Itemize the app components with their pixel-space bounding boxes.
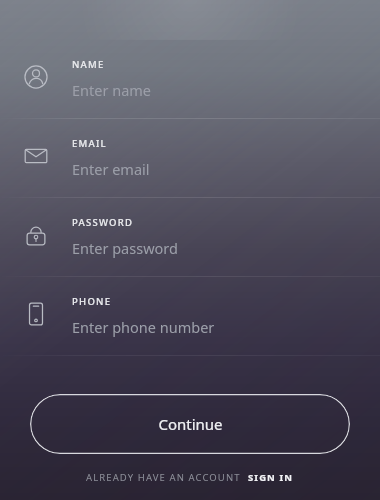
- staticText: Enter password: [72, 238, 178, 258]
- staticText: NAME: [72, 58, 105, 71]
- staticText: Enter name: [72, 80, 152, 100]
- staticText: ALREADY HAVE AN ACCOUNT: [86, 471, 241, 484]
- staticText: Enter phone number: [72, 317, 215, 337]
- staticText: PASSWORD: [72, 216, 134, 229]
- staticText: SIGN IN: [248, 471, 294, 484]
- staticText: Continue: [158, 414, 223, 434]
- button[interactable]: ALREADY HAVE AN ACCOUNT: [86, 471, 294, 484]
- staticText: Enter email: [72, 159, 150, 179]
- button[interactable]: Name: [0, 40, 380, 119]
- staticText: PHONE: [72, 295, 112, 308]
- button[interactable]: Phone: [0, 277, 380, 356]
- button[interactable]: Email: [0, 119, 380, 198]
- other: Phone: [24, 302, 48, 326]
- other: Name: [24, 65, 48, 89]
- other: Email: [24, 144, 48, 168]
- staticText: EMAIL: [72, 137, 107, 150]
- other: Password: [24, 223, 48, 247]
- button[interactable]: Password: [0, 198, 380, 277]
- button[interactable]: Continue: [30, 394, 350, 454]
